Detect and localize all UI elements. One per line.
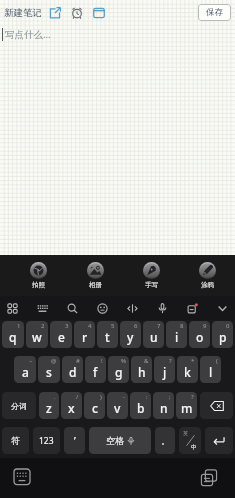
staticText: o: [196, 329, 204, 345]
staticText: -: [123, 393, 125, 401]
staticText: !: [101, 357, 103, 365]
staticText: r: [82, 329, 88, 345]
button[interactable]: 7: [143, 321, 164, 348]
button[interactable]: ;: [153, 392, 174, 419]
staticText: 手写: [145, 281, 158, 289]
staticText: g: [115, 364, 123, 380]
button[interactable]: ): [84, 392, 105, 419]
button[interactable]: 9: [189, 321, 210, 348]
button[interactable]: 手写: [123, 262, 179, 289]
button[interactable]: (: [200, 356, 221, 383]
button[interactable]: 3: [50, 321, 72, 348]
button[interactable]: 空格: [89, 427, 151, 454]
button[interactable]: 2: [26, 321, 48, 348]
staticText: 分词: [11, 401, 27, 411]
button[interactable]: :: [130, 392, 151, 419]
staticText: 6: [134, 322, 138, 330]
button[interactable]: [37, 303, 48, 314]
staticText: l: [209, 364, 213, 380]
button[interactable]: 保存: [198, 4, 231, 21]
button[interactable]: [49, 7, 61, 19]
staticText: 2: [41, 322, 45, 330]
button[interactable]: [127, 303, 138, 314]
button[interactable]: [67, 303, 78, 314]
staticText: v: [114, 400, 121, 416]
button[interactable]: 新建笔记: [4, 7, 42, 19]
button[interactable]: [205, 427, 233, 454]
staticText: b: [137, 400, 145, 416]
staticText: 5: [111, 322, 115, 330]
button[interactable]: *: [177, 356, 198, 383]
staticText: n: [160, 400, 168, 416]
staticText: c: [92, 400, 98, 416]
staticText: z: [46, 400, 52, 416]
staticText: ;: [169, 393, 171, 401]
button[interactable]: ?: [154, 356, 175, 383]
button[interactable]: /: [61, 392, 82, 419]
button[interactable]: 6: [120, 321, 141, 348]
staticText: u: [150, 329, 158, 345]
button[interactable]: 1: [2, 321, 24, 348]
button[interactable]: @: [38, 356, 60, 383]
staticText: e: [58, 329, 65, 345]
button[interactable]: [12, 467, 32, 487]
button[interactable]: -: [107, 392, 128, 419]
button[interactable]: [97, 303, 108, 314]
staticText: 7: [157, 322, 161, 330]
staticText: 保存: [206, 7, 223, 18]
staticText: 符: [11, 435, 20, 446]
button[interactable]: !: [85, 356, 106, 383]
staticText: 中: [191, 444, 197, 451]
button[interactable]: ’: [64, 427, 85, 454]
staticText: :: [146, 393, 148, 401]
staticText: @: [51, 357, 57, 365]
staticText: #: [76, 357, 80, 365]
button[interactable]: 。: [155, 427, 175, 454]
staticText: 写点什么...: [5, 28, 51, 41]
button[interactable]: 8: [166, 321, 187, 348]
staticText: ?: [169, 357, 172, 365]
staticText: t: [105, 329, 110, 345]
button[interactable]: &: [131, 356, 152, 383]
button[interactable]: .: [39, 392, 59, 419]
staticText: w: [32, 329, 42, 345]
button[interactable]: ~: [14, 356, 36, 383]
staticText: *: [191, 357, 195, 365]
button[interactable]: 拍照: [10, 262, 67, 289]
staticText: 空格: [106, 435, 124, 446]
button[interactable]: 相册: [67, 262, 123, 289]
button[interactable]: [157, 303, 168, 314]
button[interactable]: %: [108, 356, 129, 383]
button[interactable]: [200, 392, 233, 419]
button[interactable]: [93, 7, 105, 19]
staticText: s: [46, 364, 52, 380]
staticText: q: [9, 329, 17, 345]
button[interactable]: 4: [74, 321, 95, 348]
button[interactable]: [7, 303, 18, 314]
button[interactable]: 分词: [2, 392, 36, 419]
staticText: 。: [161, 435, 170, 446]
staticText: 9: [203, 322, 207, 330]
staticText: p: [219, 329, 227, 345]
button[interactable]: 英: [179, 427, 201, 454]
staticText: ?: [191, 393, 194, 401]
button[interactable]: 0: [212, 321, 233, 348]
staticText: ): [100, 393, 102, 401]
staticText: 涂鸦: [201, 281, 214, 289]
staticText: y: [127, 329, 134, 345]
staticText: ~: [29, 357, 33, 365]
button[interactable]: 符: [2, 427, 29, 454]
button[interactable]: 涂鸦: [179, 262, 235, 289]
button[interactable]: #: [62, 356, 83, 383]
staticText: 3: [65, 322, 69, 330]
staticText: 123: [39, 435, 54, 447]
button[interactable]: [187, 303, 198, 314]
button[interactable]: ?: [176, 392, 197, 419]
button[interactable]: [217, 303, 228, 314]
button[interactable]: [71, 7, 83, 19]
button[interactable]: [200, 469, 218, 487]
button[interactable]: 123: [33, 427, 60, 454]
button[interactable]: 5: [97, 321, 118, 348]
staticText: 拍照: [32, 281, 45, 289]
staticText: j: [163, 364, 167, 380]
